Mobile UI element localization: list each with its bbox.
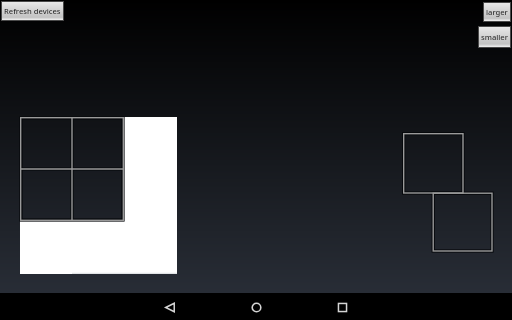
button[interactable]: smaller: [479, 27, 510, 47]
staticText: Refresh devices: [4, 6, 61, 16]
staticText: larger: [486, 7, 508, 17]
button[interactable]: Home: [231, 293, 282, 320]
button[interactable]: Recents: [317, 293, 368, 320]
button[interactable]: larger: [484, 3, 510, 21]
staticText: smaller: [481, 32, 508, 42]
button[interactable]: Refresh devices: [2, 2, 63, 20]
button[interactable]: Back: [145, 293, 196, 320]
